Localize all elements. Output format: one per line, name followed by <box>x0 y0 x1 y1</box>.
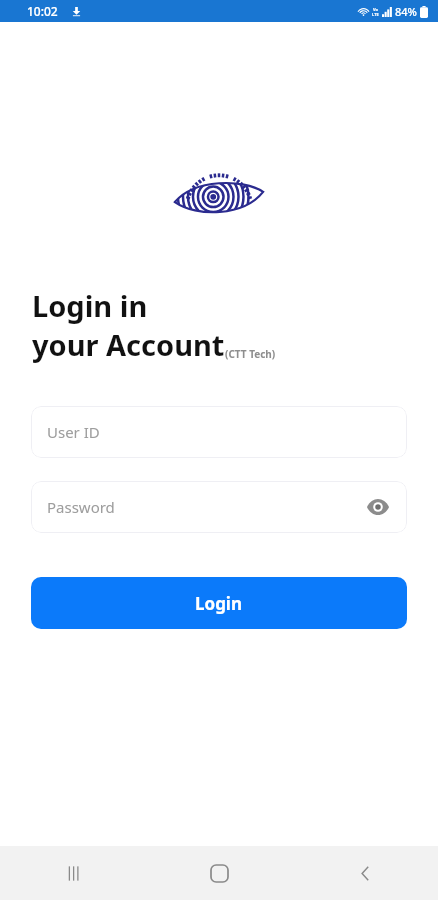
staticText: Login <box>195 592 243 615</box>
staticText: your Account <box>32 325 225 364</box>
button[interactable]: Recents <box>0 846 146 900</box>
button[interactable]: Password <box>31 481 407 533</box>
staticText: (CTT Tech) <box>225 347 276 361</box>
button[interactable]: Show password <box>363 492 393 522</box>
staticText: 10:02 <box>27 3 58 19</box>
button[interactable]: Home <box>146 846 292 900</box>
staticText: Password <box>47 497 115 517</box>
staticText: Login in <box>32 286 148 325</box>
staticText: LTE <box>372 12 379 17</box>
staticText: Vo <box>373 7 379 12</box>
button[interactable]: Login <box>31 577 407 629</box>
button[interactable]: Back <box>292 846 438 900</box>
staticText: 84% <box>395 4 417 19</box>
staticText: User ID <box>47 422 100 442</box>
button[interactable]: User ID <box>31 406 407 458</box>
